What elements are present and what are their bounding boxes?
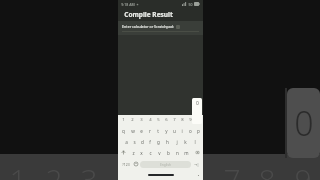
staticText: a	[125, 139, 128, 145]
button[interactable]: t	[154, 125, 162, 136]
staticText: q	[122, 128, 125, 134]
staticText: ?123	[122, 162, 130, 167]
button[interactable]: 9	[186, 115, 194, 125]
button[interactable]: q	[119, 125, 128, 136]
button[interactable]: →|	[191, 158, 201, 170]
staticText: x	[140, 150, 143, 156]
staticText: 5	[157, 117, 160, 123]
staticText: p	[197, 128, 200, 134]
staticText: 4	[149, 117, 152, 123]
button[interactable]: English	[140, 161, 191, 168]
staticText: k	[184, 139, 187, 145]
staticText: 6	[187, 159, 205, 180]
button[interactable]: a	[122, 136, 130, 147]
button[interactable]: 5	[154, 115, 162, 125]
staticText: c	[149, 150, 152, 156]
staticText: w	[131, 128, 135, 134]
button[interactable]: Keyboard settings	[197, 174, 200, 177]
button[interactable]: n	[173, 147, 182, 158]
staticText: y	[165, 128, 168, 134]
staticText: 3	[140, 117, 143, 123]
staticText: 2	[131, 117, 134, 123]
button[interactable]: e	[137, 125, 146, 136]
button[interactable]: Emoji	[132, 158, 140, 170]
staticText: f	[149, 139, 151, 145]
staticText: 1	[9, 159, 27, 180]
button[interactable]: i	[178, 125, 186, 136]
staticText: 7	[173, 117, 176, 123]
button[interactable]: Shift	[118, 147, 129, 158]
button[interactable]: 6	[162, 115, 170, 125]
button[interactable]: Compile Result	[118, 8, 203, 21]
button[interactable]: j	[172, 136, 181, 147]
button[interactable]: ?123	[120, 158, 132, 170]
staticText: 6	[165, 117, 168, 123]
staticText: Compile Result	[124, 10, 173, 19]
staticText: e	[140, 128, 143, 134]
staticText: 1	[122, 117, 125, 123]
staticText: u	[173, 128, 176, 134]
staticText: Enter calculator or Scratchpad:	[122, 24, 174, 29]
button[interactable]: g	[154, 136, 163, 147]
staticText: 0	[196, 100, 199, 107]
button[interactable]: f	[146, 136, 154, 147]
staticText: 7	[223, 159, 241, 180]
button[interactable]: b	[164, 147, 173, 158]
button[interactable]: h	[163, 136, 172, 147]
button[interactable]: c	[146, 147, 155, 158]
button[interactable]: z	[129, 147, 137, 158]
button[interactable]: w	[128, 125, 137, 136]
button[interactable]: 8	[178, 115, 186, 125]
staticText: t	[157, 128, 159, 134]
staticText: 9	[294, 159, 312, 180]
staticText: s	[133, 139, 136, 145]
button[interactable]: Backspace	[191, 147, 203, 158]
staticText: 3	[80, 159, 98, 180]
staticText: 4	[116, 159, 134, 180]
staticText: v	[158, 150, 161, 156]
button[interactable]: o	[186, 125, 194, 136]
button[interactable]: x	[137, 147, 146, 158]
staticText: m	[184, 150, 189, 156]
button[interactable]: m	[182, 147, 191, 158]
staticText: r	[149, 128, 151, 134]
staticText: 8	[181, 117, 184, 123]
staticText: 2	[45, 159, 63, 180]
staticText: j	[176, 139, 178, 145]
button[interactable]: 0	[194, 115, 202, 125]
staticText: 9:18 AM	[121, 2, 135, 7]
staticText: n	[176, 150, 179, 156]
button[interactable]: v	[155, 147, 164, 158]
staticText: 5	[152, 159, 170, 180]
staticText: English	[160, 163, 171, 167]
staticText: l	[194, 139, 196, 145]
button[interactable]: u	[170, 125, 178, 136]
button[interactable]: k	[181, 136, 190, 147]
button[interactable]: l	[190, 136, 199, 147]
button[interactable]: p	[194, 125, 202, 136]
staticText: →|	[194, 162, 199, 167]
staticText: d	[141, 139, 144, 145]
staticText: o	[189, 128, 192, 134]
staticText: z	[132, 150, 135, 156]
staticText: h	[166, 139, 169, 145]
staticText: 8	[258, 159, 276, 180]
staticText: i	[181, 128, 183, 134]
button[interactable]: 1	[119, 115, 128, 125]
staticText: 9	[189, 117, 192, 123]
button[interactable]: d	[138, 136, 146, 147]
staticText: 50	[188, 2, 193, 7]
button[interactable]: Edit	[176, 25, 180, 29]
button[interactable]: s	[130, 136, 138, 147]
button[interactable]: 2	[128, 115, 137, 125]
button[interactable]: r	[146, 125, 154, 136]
staticText: b	[167, 150, 170, 156]
button[interactable]: 4	[146, 115, 154, 125]
button[interactable]: 3	[137, 115, 146, 125]
button[interactable]: 7	[170, 115, 178, 125]
staticText: 0	[294, 100, 314, 146]
staticText: g	[157, 139, 160, 145]
button[interactable]: y	[162, 125, 170, 136]
